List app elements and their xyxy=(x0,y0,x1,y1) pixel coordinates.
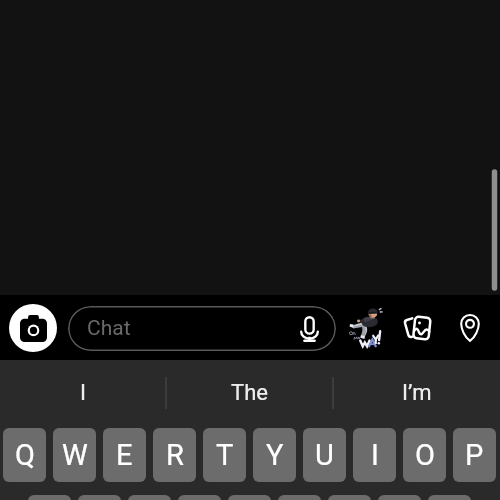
button[interactable]: Open camera xyxy=(9,304,57,352)
staticText: I xyxy=(371,438,379,472)
staticText: I’m xyxy=(402,380,432,406)
button[interactable]: G xyxy=(228,495,271,500)
button[interactable]: K xyxy=(378,495,421,500)
staticText: The xyxy=(231,380,268,406)
staticText: Chat xyxy=(87,316,131,341)
staticText: O xyxy=(415,438,435,472)
staticText: Q xyxy=(15,438,35,472)
button[interactable]: A xyxy=(28,495,71,500)
button[interactable]: E xyxy=(103,428,146,482)
staticText: T xyxy=(216,438,234,472)
button[interactable]: Memories xyxy=(396,306,440,350)
button[interactable]: Y xyxy=(253,428,296,482)
staticText: U xyxy=(315,438,334,472)
button[interactable]: The xyxy=(166,360,333,426)
button[interactable]: J xyxy=(328,495,371,500)
staticText: R xyxy=(166,438,184,472)
button[interactable]: Bitmoji sticker xyxy=(344,304,392,352)
button[interactable]: L xyxy=(428,495,471,500)
button[interactable]: T xyxy=(203,428,246,482)
staticText: W xyxy=(62,438,88,472)
button[interactable]: F xyxy=(178,495,221,500)
button[interactable]: U xyxy=(303,428,346,482)
staticText: Y xyxy=(266,438,284,472)
button[interactable]: R xyxy=(153,428,196,482)
button[interactable]: P xyxy=(453,428,496,482)
staticText: I xyxy=(80,380,86,406)
staticText: P xyxy=(465,438,484,472)
button[interactable]: I xyxy=(353,428,396,482)
button[interactable]: O xyxy=(403,428,446,482)
staticText: E xyxy=(116,438,133,472)
button[interactable]: S xyxy=(78,495,121,500)
button[interactable]: Share location xyxy=(446,306,490,350)
button[interactable]: D xyxy=(128,495,171,500)
button[interactable]: Chat xyxy=(68,306,336,351)
button[interactable]: Record voice note xyxy=(292,312,326,346)
button[interactable]: Q xyxy=(3,428,46,482)
button[interactable]: H xyxy=(278,495,321,500)
button[interactable]: W xyxy=(53,428,96,482)
button[interactable]: I xyxy=(0,360,166,426)
button[interactable]: I’m xyxy=(333,360,500,426)
